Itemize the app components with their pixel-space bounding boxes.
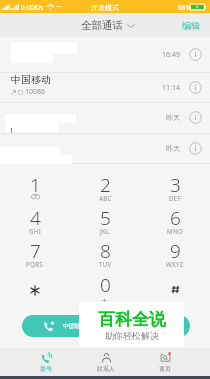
staticText: 拨号 (40, 365, 52, 373)
button[interactable]: Call details (189, 111, 202, 124)
staticText: GHI (29, 227, 42, 235)
button[interactable]: 6 (140, 204, 210, 237)
staticText: 16:49 (162, 50, 180, 60)
button[interactable]: 黄页 (141, 348, 189, 375)
staticText: 10086 (25, 87, 46, 97)
button[interactable]: 3 (140, 171, 210, 204)
button[interactable]: 昨天 (0, 102, 210, 133)
staticText: MNO (167, 227, 184, 235)
staticText: 8 (100, 238, 111, 264)
staticText: 中国移动 (11, 73, 51, 86)
button[interactable]: 1 (0, 171, 70, 204)
button[interactable]: 16:49 (0, 37, 210, 72)
button[interactable]: 0 (70, 271, 140, 304)
button[interactable]: 拨号 (22, 348, 70, 375)
staticText: ABC (99, 194, 112, 202)
button[interactable]: 全部通话 (77, 16, 139, 35)
staticText: DEF (169, 194, 182, 202)
staticText: 编辑 (182, 20, 200, 31)
button[interactable]: Call details (189, 142, 202, 155)
staticText: PQRS (26, 260, 44, 268)
staticText: TUV (99, 260, 112, 268)
staticText: 助你轻松解决 (105, 330, 159, 341)
staticText: 3 (170, 172, 181, 198)
button[interactable]: 2 (70, 171, 140, 204)
button[interactable]: Call with SIM 2 (110, 315, 190, 337)
button[interactable] (0, 271, 70, 304)
button[interactable]: 昨天 (0, 133, 210, 163)
button[interactable]: Call details (189, 48, 202, 61)
staticText: 4 (30, 205, 41, 231)
staticText: 开发模式 (91, 3, 119, 12)
staticText: + (102, 294, 108, 306)
staticText: ··· (56, 2, 62, 12)
staticText: 全部通话 (81, 19, 123, 32)
staticText: 0.00K/s (21, 3, 44, 12)
button[interactable]: 百科全说 (79, 302, 184, 347)
button[interactable]: 8 (70, 237, 140, 271)
staticText: 6 (170, 205, 181, 231)
staticText: 1 (30, 172, 41, 198)
staticText: 昨天 (166, 144, 180, 153)
staticText: WXYZ (166, 260, 184, 268)
staticText: 9 (170, 238, 181, 264)
staticText: 5 (100, 205, 111, 231)
button[interactable] (140, 271, 210, 304)
staticText: 2 (100, 172, 111, 198)
button[interactable]: 5 (70, 204, 140, 237)
button[interactable]: 4 (0, 204, 70, 237)
button[interactable]: Call details (189, 81, 202, 94)
staticText: 11:14 (162, 83, 180, 93)
staticText: 0 (100, 272, 111, 298)
staticText: 黄页 (159, 365, 171, 373)
button[interactable]: 7 (0, 237, 70, 271)
staticText: 68% (178, 3, 191, 12)
staticText: JKL (100, 227, 110, 235)
staticText: 7 (30, 238, 41, 264)
button[interactable]: 9 (140, 237, 210, 271)
staticText: 中国移动 (63, 322, 87, 330)
staticText: 昨天 (166, 113, 180, 122)
button[interactable]: 中国移动 (22, 315, 102, 337)
staticText: 百科全说 (98, 309, 166, 330)
button[interactable]: 11:14 (0, 72, 210, 103)
button[interactable]: 编辑 (173, 13, 210, 37)
button[interactable]: 联系人 (82, 348, 130, 375)
staticText: 联系人 (97, 365, 115, 373)
